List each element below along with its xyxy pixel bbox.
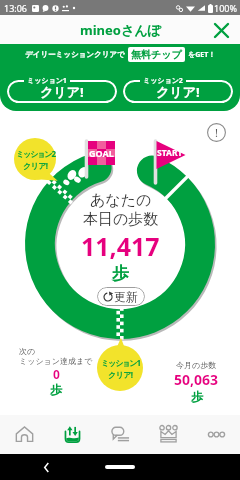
staticText: ミッション1 [27,76,67,86]
button[interactable]: Data usage [48,415,96,454]
staticText: ! [215,125,218,140]
staticText: 50,063 [174,370,219,389]
button[interactable]: Information [205,121,227,143]
staticText: 歩 [112,263,129,284]
staticText: START [157,147,183,159]
staticText: 11,417 [81,229,160,263]
button[interactable]: Rewards [144,415,192,454]
button[interactable]: Community [96,415,144,454]
staticText: 今月の歩数 [176,360,217,370]
button[interactable]: クリア! [7,80,117,103]
staticText: 13:06 [4,2,28,14]
staticText: ミッション達成まで [19,356,93,366]
staticText: あなたの [90,191,152,210]
staticText: クリア! [108,369,133,380]
staticText: 100% [214,2,237,14]
staticText: クリア! [156,83,200,101]
staticText: 更新 [114,289,138,304]
staticText: mineoさんぽ [80,21,161,39]
staticText: 次の [19,346,36,356]
staticText: ミッション2 [143,76,183,86]
staticText: 0 [53,366,60,382]
staticText: クリア! [23,160,48,171]
staticText: クリア! [40,83,84,101]
staticText: 歩 [191,389,203,404]
button[interactable]: Home [0,415,48,454]
button[interactable]: クリア! [123,80,233,103]
staticText: ミッション1 [101,357,140,368]
staticText: をGET！ [188,50,216,60]
button[interactable]: More [192,415,240,454]
staticText: デイリーミッションクリアで [25,50,125,59]
staticText: GOAL [89,147,114,159]
staticText: 無料チップ [131,48,182,61]
staticText: ミッション2 [16,148,55,159]
button[interactable]: 更新 [97,287,145,306]
staticText: 歩 [50,382,62,397]
button[interactable]: Close [210,19,232,41]
staticText: 本日の歩数 [83,210,159,229]
